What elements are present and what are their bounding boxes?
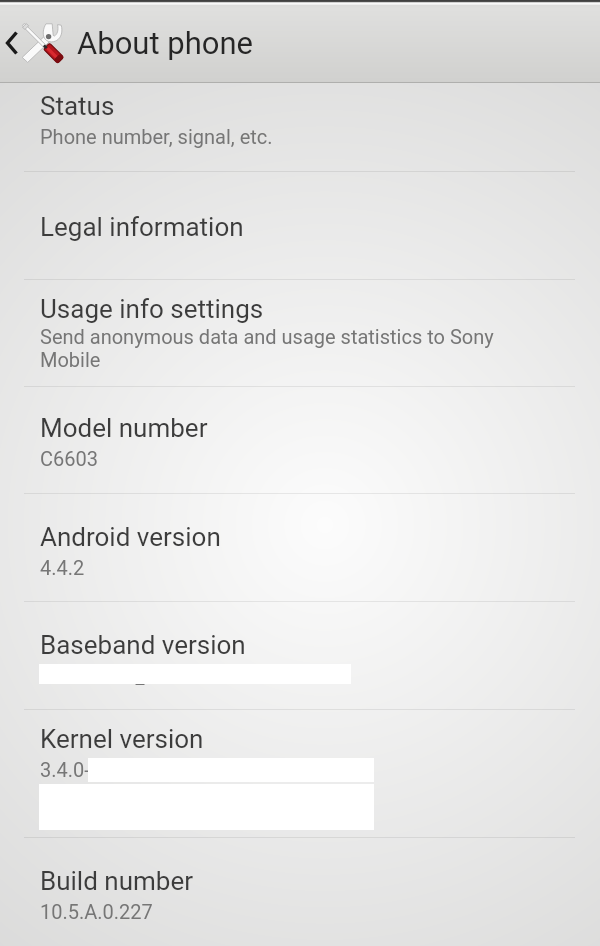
staticText: Model number xyxy=(40,413,208,443)
staticText: Android version xyxy=(40,522,221,552)
button[interactable]: Kernel version xyxy=(0,709,600,837)
staticText: Status xyxy=(40,91,115,121)
button[interactable]: Status xyxy=(0,82,600,171)
staticText: Send anonymous data and usage statistics… xyxy=(40,325,494,371)
staticText: About phone xyxy=(77,25,253,61)
staticText: Baseband version xyxy=(40,630,246,660)
staticText: Phone number, signal, etc. xyxy=(40,125,273,148)
staticText: 4.4.2 xyxy=(40,556,85,579)
button[interactable]: Build number xyxy=(0,837,600,946)
staticText: 3.4.0-perf-g000000 0000000000000000000 0… xyxy=(40,758,254,828)
button[interactable]: Navigate up, About phone xyxy=(0,3,253,83)
staticText: Kernel version xyxy=(40,724,204,754)
button[interactable]: Legal information xyxy=(0,171,600,279)
button[interactable]: Android version xyxy=(0,493,600,601)
staticText: 1288-2253_9.1.A.0.121 xyxy=(40,664,247,687)
staticText: C6603 xyxy=(40,447,98,470)
staticText: Usage info settings xyxy=(40,294,264,324)
staticText: Legal information xyxy=(40,212,244,242)
button[interactable]: Model number xyxy=(0,386,600,493)
button[interactable]: Usage info settings xyxy=(0,279,600,386)
staticText: Build number xyxy=(40,866,193,896)
button[interactable]: Baseband version xyxy=(0,601,600,709)
staticText: 10.5.A.0.227 xyxy=(40,900,153,923)
